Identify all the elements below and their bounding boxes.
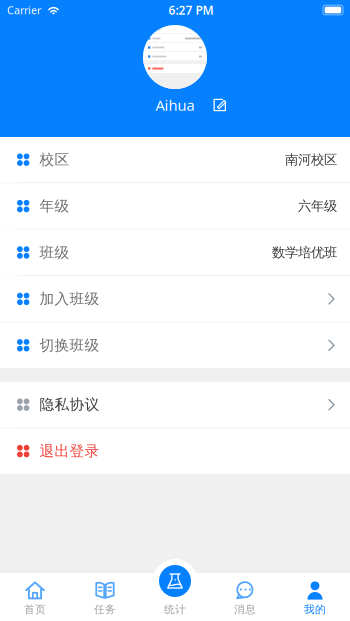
button[interactable]: 加入班级 [0,276,350,322]
button[interactable]: Edit profile [213,98,227,111]
staticText: 校区 [39,151,69,169]
button[interactable]: 统计 [159,565,191,597]
staticText: 隐私协议 [39,396,99,414]
staticText: Carrier [7,3,41,17]
staticText: 消息 [234,603,256,616]
button[interactable]: 校区 [0,137,350,182]
staticText: 退出登录 [39,442,99,460]
staticText: 加入班级 [39,290,99,308]
staticText: 统计 [164,603,186,616]
staticText: 年级 [39,197,69,215]
staticText: 班级 [39,243,69,261]
staticText: 首页 [24,603,46,616]
button[interactable]: 切换班级 [0,323,350,368]
staticText: Aihua [155,95,194,115]
staticText: 任务 [94,603,116,616]
button[interactable]: 我的 [280,573,350,621]
staticText: 六年级 [298,198,337,214]
button[interactable]: 隐私协议 [0,382,350,427]
button[interactable]: 年级 [0,183,350,229]
staticText: 我的 [304,603,326,616]
staticText: 数学培优班 [272,244,337,261]
button[interactable]: 统计 [140,573,210,621]
button[interactable]: 消息 [210,573,280,621]
button[interactable]: 班级 [0,230,350,275]
staticText: 南河校区 [285,151,337,168]
button[interactable]: 首页 [0,573,70,621]
staticText: 6:27 PM [168,2,213,18]
button[interactable]: 退出登录 [0,428,350,474]
button[interactable]: 任务 [70,573,140,621]
staticText: 切换班级 [39,336,99,354]
